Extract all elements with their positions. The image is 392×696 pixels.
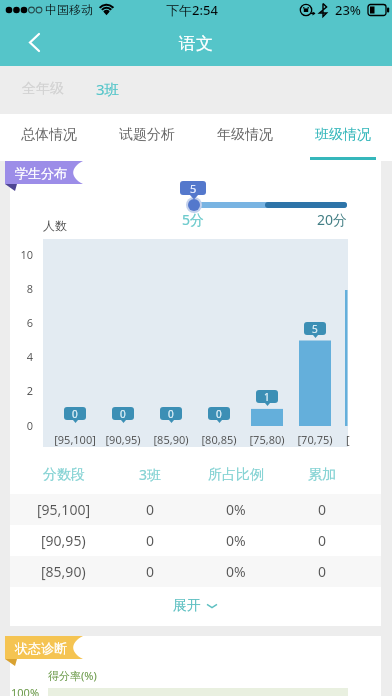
staticText: 全年级	[22, 80, 64, 98]
staticText: [75,80)	[241, 432, 293, 447]
staticText: 总体情况	[21, 126, 77, 144]
button[interactable]: Back	[0, 21, 50, 66]
staticText: 0	[318, 500, 327, 519]
staticText: 23%	[335, 1, 361, 19]
button[interactable]: 总体情况	[0, 114, 98, 161]
staticText: 所占比例	[208, 466, 264, 484]
staticText: 0	[146, 562, 155, 581]
staticText: 100%	[11, 685, 40, 696]
staticText: 展开	[173, 597, 201, 615]
button[interactable]: 3班	[96, 79, 120, 99]
staticText: 4	[10, 349, 33, 364]
staticText: 班级情况	[315, 126, 371, 144]
button[interactable]: 年级情况	[196, 114, 294, 161]
staticText: 0	[146, 531, 155, 550]
button[interactable]: 全年级	[22, 80, 64, 98]
staticText: 0	[120, 407, 126, 420]
button[interactable]: 试题分析	[98, 114, 196, 161]
staticText: [90,95)	[97, 432, 149, 447]
staticText: 学生分布	[15, 165, 67, 181]
staticText: [70,75)	[289, 432, 341, 447]
staticText: 0	[168, 407, 174, 420]
staticText: 6	[10, 315, 33, 330]
staticText: 年级情况	[217, 126, 273, 144]
staticText: 2	[10, 383, 33, 398]
staticText: 8	[10, 281, 33, 296]
staticText: 3班	[96, 79, 120, 99]
button[interactable]: 展开	[10, 587, 381, 625]
staticText: [80,85)	[193, 432, 245, 447]
staticText: 5分	[182, 210, 205, 229]
staticText: 得分率(%)	[48, 668, 97, 683]
staticText: 20分	[317, 210, 348, 229]
staticText: 1	[264, 390, 270, 403]
staticText: 0	[318, 562, 327, 581]
staticText: 0%	[226, 531, 246, 550]
staticText: 0	[146, 500, 155, 519]
staticText: 中国移动	[45, 2, 93, 17]
staticText: 分数段	[43, 466, 85, 484]
staticText: [85,90)	[41, 562, 86, 581]
staticText: 10	[10, 247, 33, 262]
staticText: 人数	[43, 218, 67, 233]
staticText: 0	[72, 407, 78, 420]
staticText: 状态诊断	[15, 640, 67, 656]
staticText: [95,100]	[49, 432, 101, 447]
staticText: [90,95)	[41, 531, 86, 550]
staticText: 5	[312, 322, 318, 335]
staticText: 下午2:54	[166, 1, 218, 19]
staticText: [95,100]	[37, 500, 91, 519]
staticText: 试题分析	[119, 126, 175, 144]
staticText: 0	[216, 407, 222, 420]
staticText: [	[346, 432, 350, 447]
staticText: 0	[318, 531, 327, 550]
staticText: 语文	[179, 33, 213, 54]
staticText: 3班	[139, 465, 162, 484]
staticText: 0%	[226, 500, 246, 519]
staticText: 5	[190, 181, 197, 195]
button[interactable]: 班级情况	[294, 114, 392, 161]
staticText: 0%	[226, 562, 246, 581]
staticText: [85,90)	[145, 432, 197, 447]
staticText: 累加	[308, 466, 336, 484]
staticText: 0	[10, 418, 33, 433]
